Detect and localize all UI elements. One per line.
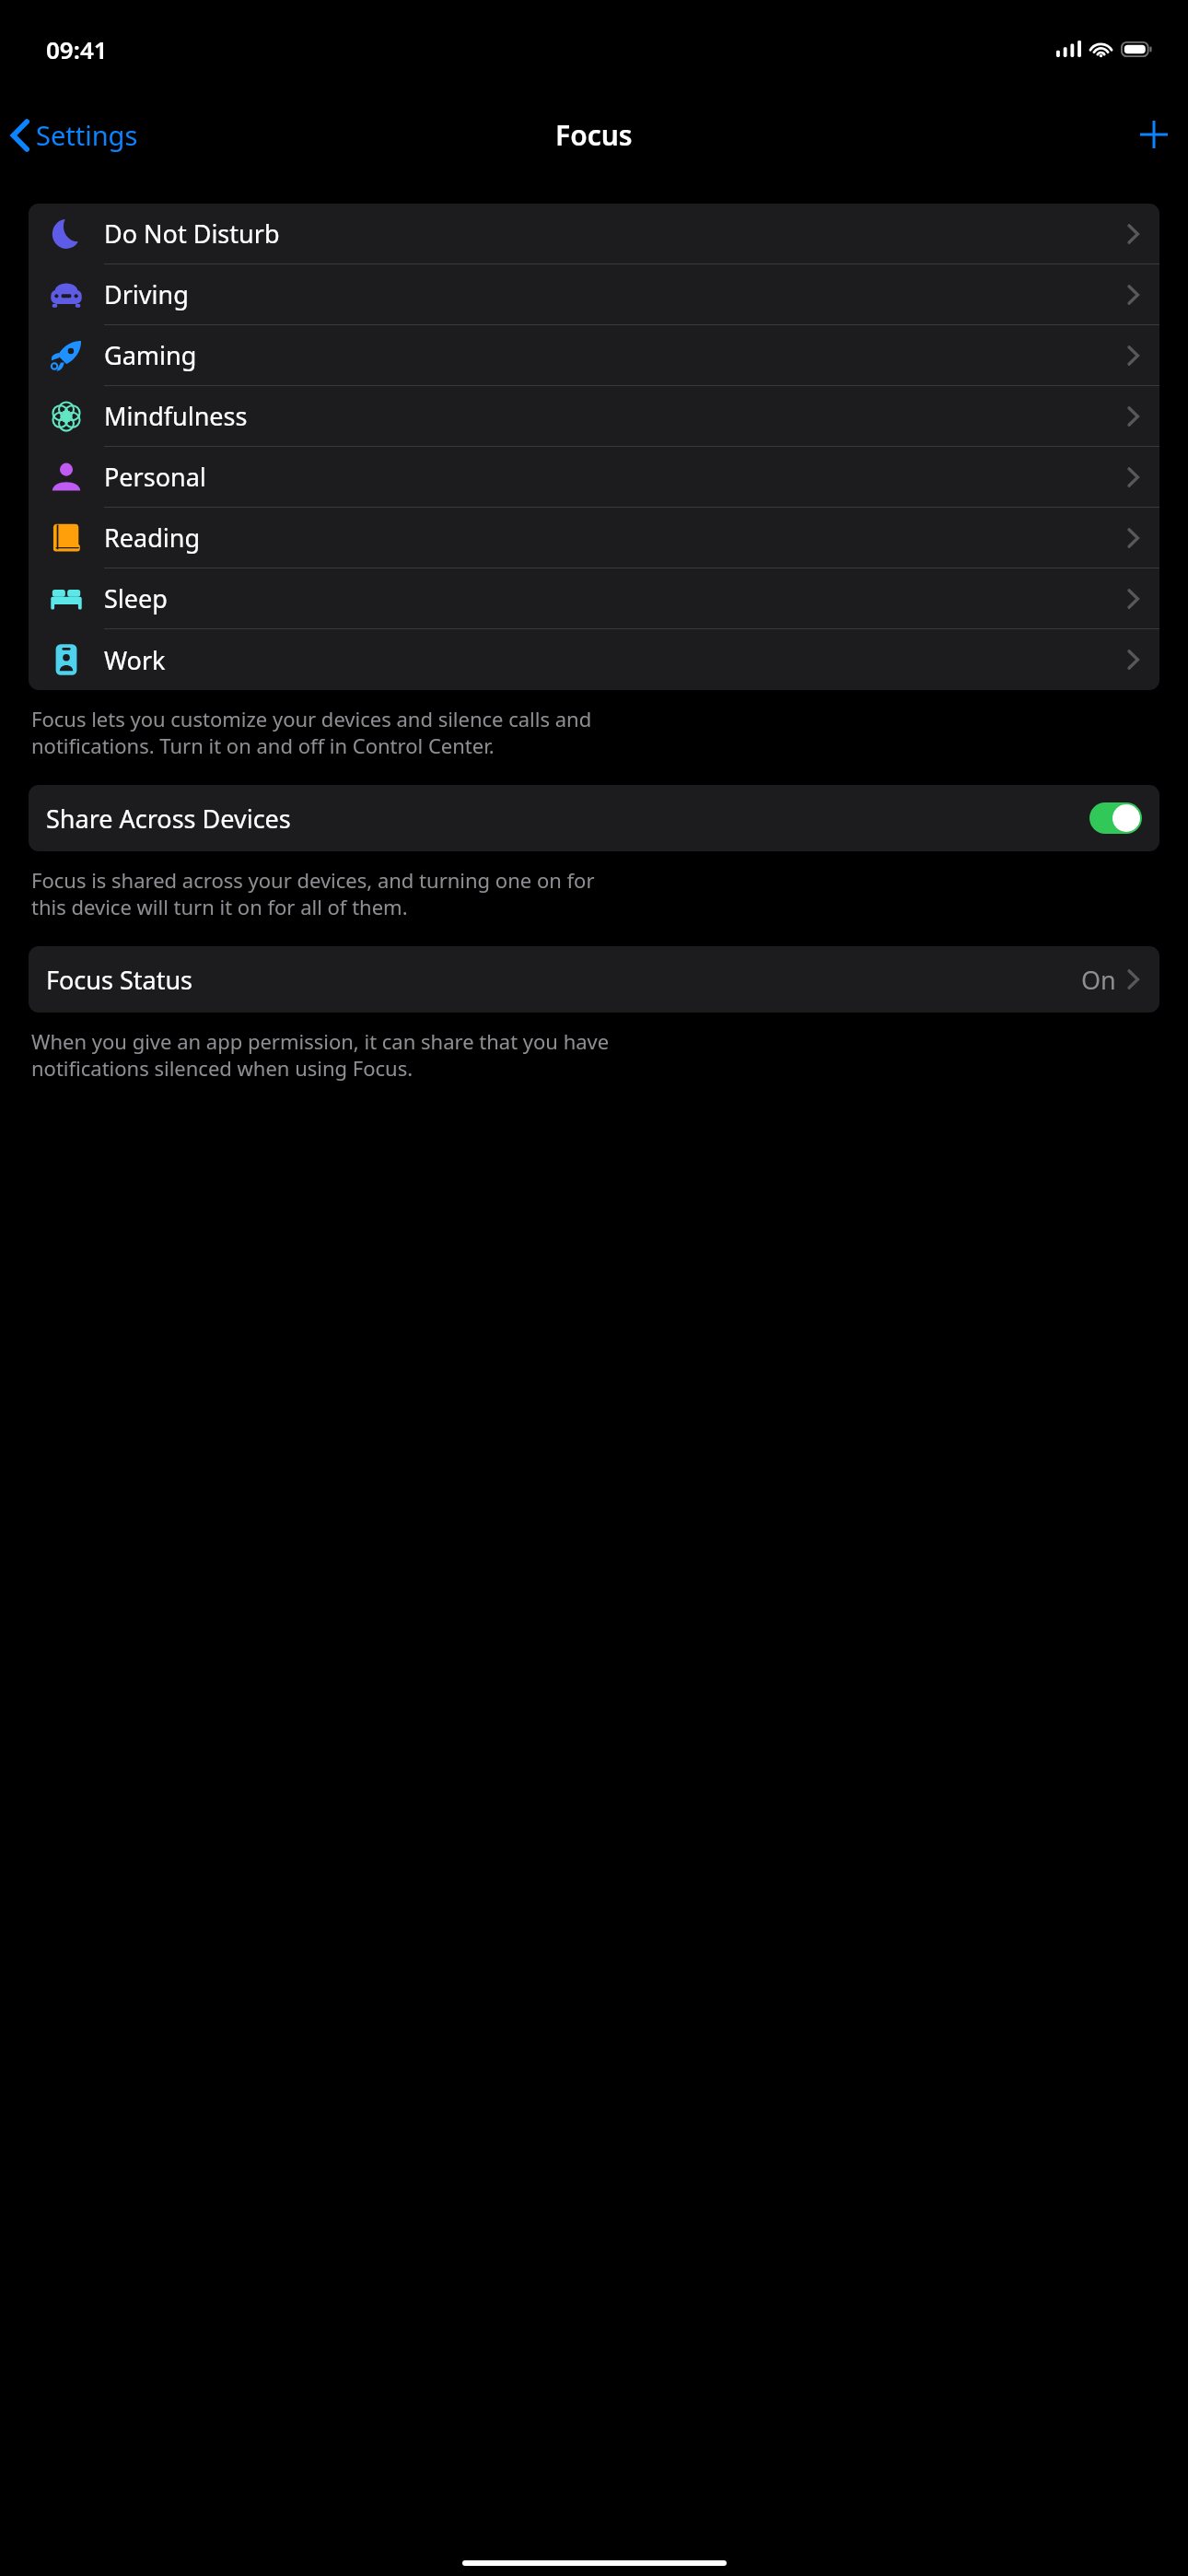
staticText: 09:41 [46,33,108,65]
button[interactable]: Sleep [29,568,1159,629]
button[interactable]: Gaming [29,325,1159,386]
other: Share Across Devices toggle, on [1089,802,1142,834]
staticText: When you give an app permission, it can … [31,1027,1157,1082]
staticText: Mindfulness [104,399,248,433]
button[interactable]: Driving [29,264,1159,325]
button[interactable]: Work [29,629,1159,690]
button[interactable]: Add Focus [1120,108,1188,161]
staticText: Work [104,643,166,677]
staticText: Focus is shared across your devices, and… [31,866,1157,920]
staticText: Focus [555,116,633,154]
staticText: Focus Status [46,963,193,997]
staticText: On [1081,963,1116,997]
button[interactable]: Do Not Disturb [29,204,1159,264]
button[interactable]: Reading [29,508,1159,568]
button[interactable]: Settings [0,110,149,160]
staticText: Do Not Disturb [104,217,280,251]
staticText: Settings [36,117,138,153]
staticText: Focus lets you customize your devices an… [31,705,1157,759]
staticText: Share Across Devices [46,802,291,836]
button[interactable]: Focus Status [29,946,1159,1013]
button[interactable]: Personal [29,447,1159,508]
button[interactable]: Mindfulness [29,386,1159,447]
button[interactable]: Share Across Devices [29,785,1159,851]
staticText: Driving [104,277,189,311]
staticText: Personal [104,460,206,494]
staticText: Sleep [104,581,168,615]
staticText: Gaming [104,338,197,372]
staticText: Reading [104,521,201,555]
